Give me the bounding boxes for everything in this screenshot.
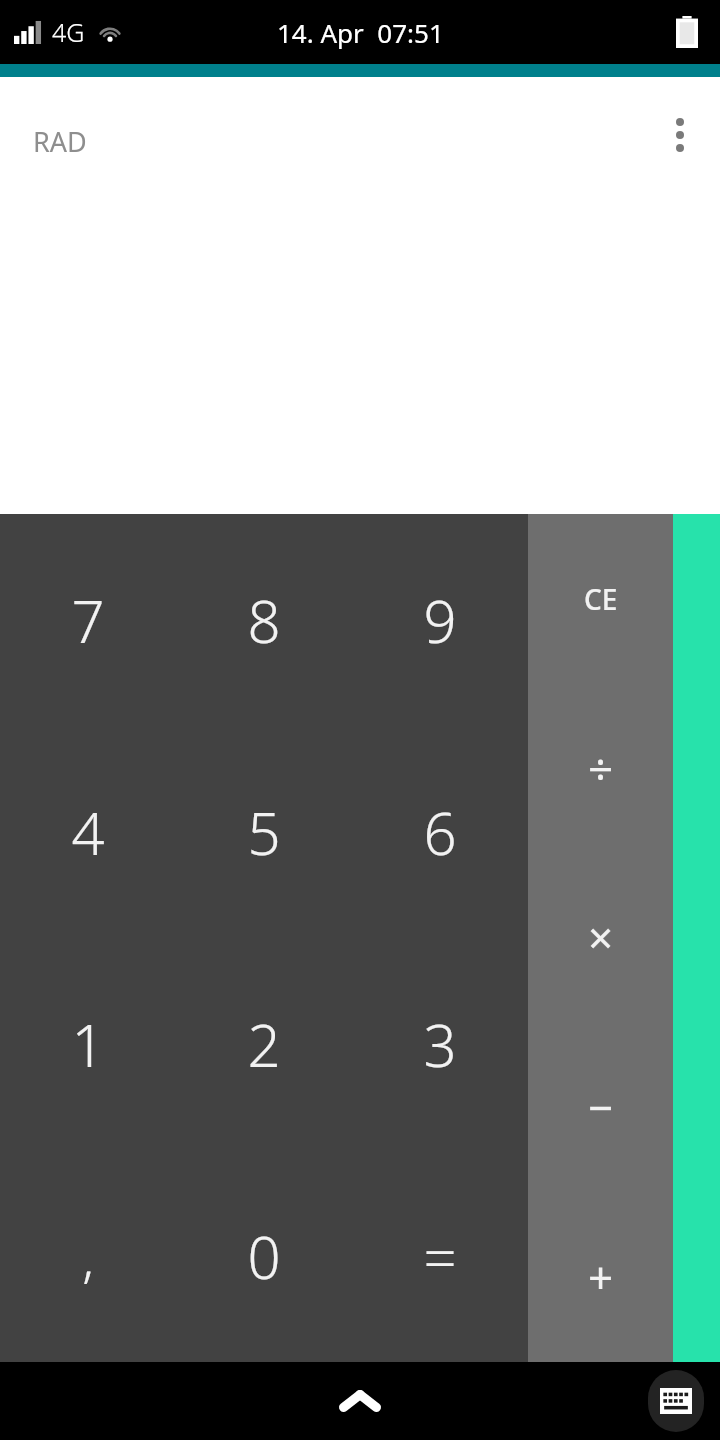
button[interactable]: 5 [176,726,352,938]
staticText: , [82,1221,94,1292]
button[interactable]: ÷ [528,683,673,852]
button[interactable]: 1 [0,938,176,1150]
staticText: − [588,1077,614,1137]
staticText: 3 [423,1005,457,1084]
staticText: ÷ [588,738,614,798]
button[interactable]: − [528,1022,673,1192]
staticText: 5 [247,793,281,872]
staticText: 9 [423,581,457,660]
button[interactable]: 4 [0,726,176,938]
staticText: 4 [71,793,105,872]
staticText: 14. Apr 07:51 [277,15,444,50]
staticText: 4G [52,15,85,49]
staticText: + [588,1247,614,1307]
staticText: 2 [247,1005,281,1084]
button[interactable]: = [352,1150,528,1362]
staticText: 6 [423,793,457,872]
staticText: CE [584,580,618,618]
button[interactable]: Switch keyboard [648,1370,704,1432]
button[interactable]: More options [652,107,708,163]
staticText: = [423,1217,457,1296]
button[interactable]: 8 [176,514,352,726]
button[interactable]: Back [320,1362,400,1440]
button[interactable]: , [0,1150,176,1362]
staticText: 1 [71,1005,105,1084]
staticText: × [588,907,614,967]
button[interactable]: 2 [176,938,352,1150]
button[interactable]: + [528,1192,673,1362]
button[interactable]: CE [528,514,673,683]
staticText: 8 [247,581,281,660]
button[interactable]: × [528,852,673,1022]
button[interactable]: 6 [352,726,528,938]
staticText: 7 [71,581,105,660]
button[interactable]: 7 [0,514,176,726]
button[interactable]: 9 [352,514,528,726]
staticText: RAD [33,123,87,160]
button[interactable]: 0 [176,1150,352,1362]
button[interactable]: 3 [352,938,528,1150]
staticText: 0 [247,1217,281,1296]
